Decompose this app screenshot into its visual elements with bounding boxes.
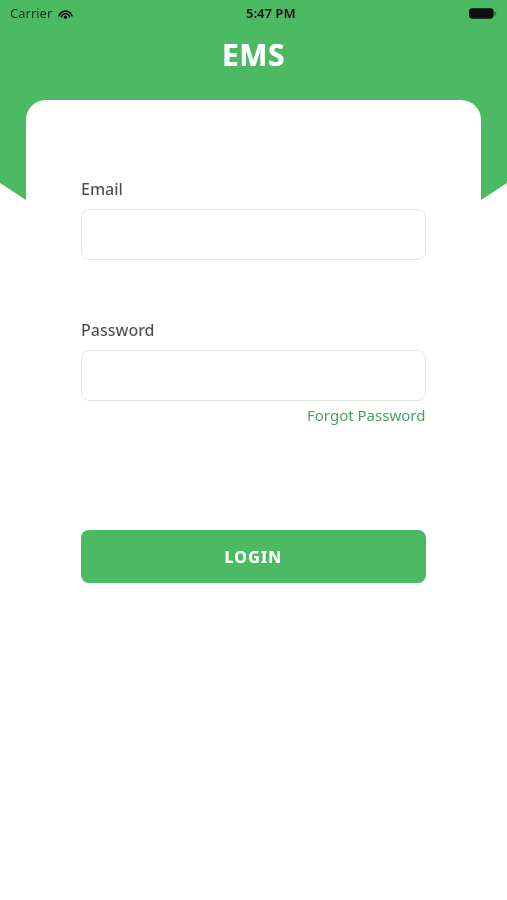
button[interactable]: LOGIN xyxy=(81,530,426,583)
button[interactable] xyxy=(81,350,426,401)
button[interactable] xyxy=(81,209,426,260)
button[interactable]: Forgot Password xyxy=(307,405,426,425)
staticText: Forgot Password xyxy=(307,405,426,425)
staticText: EMS xyxy=(222,34,286,75)
staticText: Email xyxy=(81,178,123,200)
staticText: Carrier xyxy=(10,4,53,22)
staticText: 5:47 PM xyxy=(246,4,296,22)
staticText: Password xyxy=(81,319,155,341)
staticText: LOGIN xyxy=(224,546,283,568)
